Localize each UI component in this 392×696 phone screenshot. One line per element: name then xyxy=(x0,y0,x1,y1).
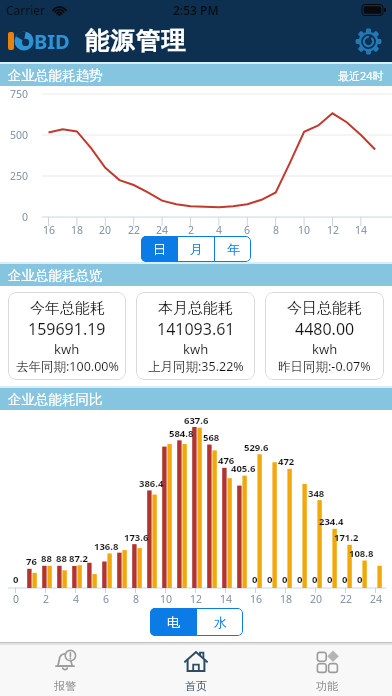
staticText: 上月同期:35.22% xyxy=(148,358,244,373)
staticText: 8 xyxy=(273,223,280,237)
staticText: kwh xyxy=(183,340,209,358)
staticText: 水 xyxy=(214,614,227,630)
staticText: kwh xyxy=(312,340,338,358)
staticText: 234.4 xyxy=(319,515,344,528)
staticText: 24 xyxy=(156,223,169,237)
staticText: 去年同期:100.00% xyxy=(16,358,119,373)
staticText: Carrier xyxy=(6,2,46,18)
staticText: 637.6 xyxy=(184,414,209,427)
staticText: 报警 xyxy=(54,679,76,693)
staticText: 今年总能耗 xyxy=(30,299,105,318)
button[interactable]: 月 xyxy=(178,236,214,262)
staticText: 386.4 xyxy=(139,477,164,490)
staticText: 4480.00 xyxy=(295,318,355,340)
staticText: 87.2 xyxy=(69,552,88,565)
button[interactable]: 今日总能耗 xyxy=(265,292,384,380)
staticText: 173.6 xyxy=(124,531,149,544)
staticText: 能源管理 xyxy=(84,26,186,56)
staticText: BID xyxy=(34,28,70,55)
staticText: 171.2 xyxy=(334,531,359,544)
staticText: 4 xyxy=(216,223,223,237)
staticText: 16 xyxy=(43,223,56,237)
staticText: 12 xyxy=(327,223,340,237)
staticText: 529.6 xyxy=(244,441,269,454)
button[interactable]: 报警 xyxy=(0,645,130,696)
button[interactable]: 首页 xyxy=(130,645,261,696)
staticText: 22 xyxy=(128,223,141,237)
staticText: 4 xyxy=(73,592,80,606)
staticText: 24 xyxy=(370,592,383,606)
staticText: 12 xyxy=(190,592,203,606)
staticText: 0 xyxy=(342,573,348,586)
staticText: 企业总能耗趋势 xyxy=(8,67,103,84)
staticText: 0 xyxy=(327,573,333,586)
staticText: 14 xyxy=(220,592,233,606)
staticText: 20 xyxy=(310,592,323,606)
staticText: 0 xyxy=(357,573,363,586)
staticText: 0 xyxy=(297,573,303,586)
staticText: 14 xyxy=(355,223,368,237)
staticText: 2 xyxy=(188,223,195,237)
staticText: 6 xyxy=(244,223,251,237)
staticText: 136.8 xyxy=(94,540,119,553)
button[interactable]: 今年总能耗 xyxy=(8,292,126,380)
staticText: 76 xyxy=(26,555,37,568)
staticText: 日 xyxy=(153,241,166,257)
staticText: 月 xyxy=(190,241,203,257)
staticText: 0 xyxy=(21,210,28,224)
staticText: 企业总能耗同比 xyxy=(8,391,103,408)
staticText: 0 xyxy=(252,573,258,586)
staticText: 88 xyxy=(56,552,67,565)
button[interactable]: 日 xyxy=(141,236,177,262)
staticText: kwh xyxy=(54,340,80,358)
staticText: 500 xyxy=(9,128,28,142)
staticText: 108.8 xyxy=(349,547,374,560)
staticText: 2:53 PM xyxy=(173,2,219,18)
staticText: 141093.61 xyxy=(157,318,235,340)
staticText: 首页 xyxy=(185,679,207,693)
staticText: 159691.19 xyxy=(28,318,106,340)
staticText: 0 xyxy=(267,573,273,586)
staticText: 750 xyxy=(9,87,28,101)
staticText: 企业总能耗总览 xyxy=(8,267,103,284)
button[interactable]: 年 xyxy=(215,236,251,262)
staticText: 18 xyxy=(71,223,84,237)
staticText: 20 xyxy=(99,223,112,237)
staticText: 10 xyxy=(160,592,173,606)
button[interactable]: 电 xyxy=(150,608,196,636)
staticText: 0 xyxy=(312,573,318,586)
button[interactable]: 水 xyxy=(197,608,243,636)
staticText: 0 xyxy=(13,592,20,606)
staticText: 405.6 xyxy=(231,462,256,475)
staticText: 348 xyxy=(308,487,325,500)
staticText: 568 xyxy=(203,431,220,444)
staticText: 584.8 xyxy=(169,427,194,440)
staticText: 0 xyxy=(13,573,19,586)
staticText: 16 xyxy=(250,592,263,606)
staticText: 本月总能耗 xyxy=(158,299,233,318)
button[interactable]: 功能 xyxy=(261,645,392,696)
staticText: 250 xyxy=(9,169,28,183)
staticText: 电 xyxy=(167,614,180,630)
staticText: 18 xyxy=(280,592,293,606)
staticText: 476 xyxy=(218,454,235,467)
staticText: 22 xyxy=(340,592,353,606)
staticText: 2 xyxy=(43,592,50,606)
staticText: 年 xyxy=(227,241,240,257)
button[interactable] xyxy=(355,28,382,55)
staticText: 8 xyxy=(133,592,140,606)
staticText: 今日总能耗 xyxy=(287,299,362,318)
staticText: 88 xyxy=(41,552,52,565)
button[interactable]: 本月总能耗 xyxy=(136,292,255,380)
staticText: 昨日同期:-0.07% xyxy=(278,358,371,373)
staticText: 最近24时 xyxy=(338,68,384,83)
staticText: 472 xyxy=(278,455,295,468)
staticText: 10 xyxy=(298,223,311,237)
staticText: 0 xyxy=(282,573,288,586)
staticText: 功能 xyxy=(316,679,338,693)
staticText: 6 xyxy=(103,592,110,606)
